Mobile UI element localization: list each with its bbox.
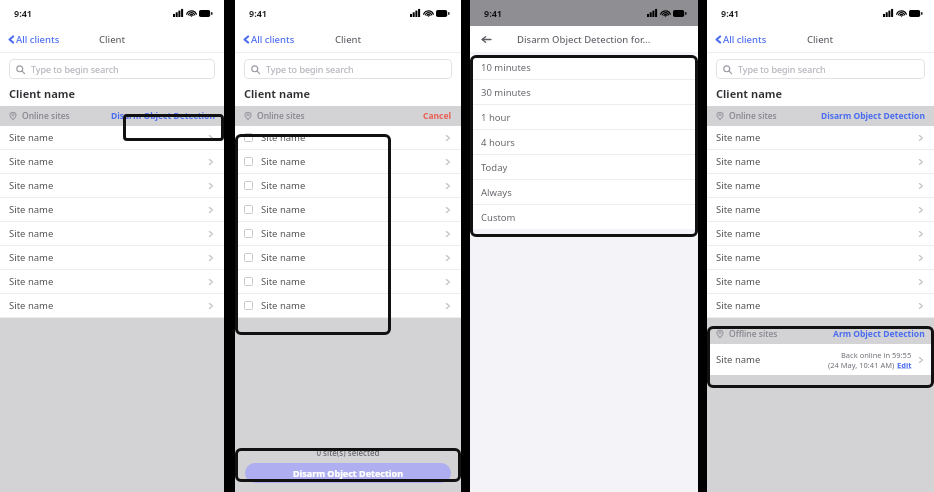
button[interactable]: Custom <box>470 205 698 229</box>
staticText: Type to begin search <box>738 63 826 75</box>
staticText: Site name <box>9 275 54 288</box>
staticText: Client <box>99 33 126 46</box>
button[interactable]: Type to begin search <box>9 59 215 79</box>
button[interactable]: Site name <box>0 246 224 270</box>
staticText: Site name <box>261 155 306 168</box>
button[interactable]: Back <box>479 32 493 46</box>
staticText: Site name <box>716 227 761 240</box>
staticText: 9:41 <box>249 7 267 19</box>
button[interactable]: Today <box>470 155 698 180</box>
button[interactable]: Edit <box>897 360 912 370</box>
staticText: Always <box>481 186 512 199</box>
button[interactable]: Site name <box>0 198 224 222</box>
button[interactable]: Disarm Object Detection <box>111 110 215 122</box>
staticText: Disarm Object Detection for... <box>517 33 651 46</box>
staticText: 9:41 <box>14 7 32 19</box>
button[interactable]: Site name <box>707 150 934 174</box>
staticText: Client <box>807 33 834 46</box>
staticText: Today <box>481 161 508 174</box>
staticText: All clients <box>16 33 60 46</box>
staticText: Site name <box>716 131 761 144</box>
button[interactable]: Disarm Object Detection <box>245 463 451 483</box>
staticText: Site name <box>261 251 306 264</box>
button[interactable]: Site name <box>235 150 461 174</box>
staticText: Site name <box>9 155 54 168</box>
button[interactable]: Always <box>470 180 698 205</box>
staticText: Site name <box>9 203 54 216</box>
button[interactable]: 30 minutes <box>470 80 698 105</box>
staticText: Site name <box>9 299 54 312</box>
staticText: Client name <box>9 86 76 101</box>
staticText: Site name <box>261 179 306 192</box>
staticText: Site name <box>9 131 54 144</box>
staticText: 9:41 <box>721 7 739 19</box>
button[interactable]: Site name <box>707 198 934 222</box>
button[interactable]: Site name <box>0 126 224 150</box>
button[interactable]: Cancel <box>423 110 452 122</box>
button[interactable]: Site name <box>235 174 461 198</box>
button[interactable]: Site name <box>0 150 224 174</box>
button[interactable]: Site name <box>0 294 224 318</box>
staticText: Disarm Object Detection <box>821 110 925 122</box>
staticText: 9:41 <box>484 7 502 19</box>
staticText: Client name <box>716 86 783 101</box>
staticText: Site name <box>261 299 306 312</box>
staticText: 0 site(s) selected <box>235 447 461 458</box>
button[interactable]: Site name <box>0 174 224 198</box>
button[interactable]: Site name <box>235 222 461 246</box>
staticText: Site name <box>716 155 761 168</box>
staticText: Online sites <box>729 110 777 122</box>
button[interactable]: Site name <box>235 198 461 222</box>
staticText: All clients <box>251 33 295 46</box>
staticText: Edit <box>897 360 912 370</box>
staticText: Site name <box>716 353 761 366</box>
staticText: Arm Object Detection <box>833 328 925 340</box>
staticText: Site name <box>716 179 761 192</box>
staticText: Site name <box>261 131 306 144</box>
staticText: Site name <box>261 227 306 240</box>
button[interactable]: Site name <box>707 344 934 375</box>
button[interactable]: Arm Object Detection <box>833 328 925 340</box>
staticText: Site name <box>716 251 761 264</box>
staticText: (24 May, 10:41 AM) <box>828 360 897 370</box>
staticText: Type to begin search <box>266 63 354 75</box>
staticText: Disarm Object Detection <box>293 467 404 479</box>
staticText: 1 hour <box>481 111 511 124</box>
button[interactable]: Site name <box>707 174 934 198</box>
button[interactable]: Site name <box>235 246 461 270</box>
button[interactable]: 4 hours <box>470 130 698 155</box>
staticText: Type to begin search <box>31 63 119 75</box>
staticText: Offline sites <box>729 328 778 340</box>
staticText: Site name <box>261 275 306 288</box>
staticText: Online sites <box>22 110 70 122</box>
button[interactable]: Site name <box>707 222 934 246</box>
button[interactable]: Site name <box>0 270 224 294</box>
staticText: Online sites <box>257 110 305 122</box>
button[interactable]: Disarm Object Detection <box>821 110 925 122</box>
staticText: Cancel <box>423 110 452 122</box>
button[interactable]: Site name <box>235 270 461 294</box>
button[interactable]: All clients <box>242 33 295 46</box>
staticText: Custom <box>481 211 516 224</box>
button[interactable]: Site name <box>707 246 934 270</box>
button[interactable]: Site name <box>707 294 934 318</box>
button[interactable]: 10 minutes <box>470 55 698 80</box>
button[interactable]: Site name <box>0 222 224 246</box>
button[interactable]: All clients <box>714 33 767 46</box>
button[interactable]: Site name <box>707 126 934 150</box>
button[interactable]: 1 hour <box>470 105 698 130</box>
button[interactable]: Type to begin search <box>244 59 452 79</box>
staticText: All clients <box>723 33 767 46</box>
button[interactable]: Site name <box>235 294 461 318</box>
button[interactable]: Site name <box>235 126 461 150</box>
staticText: 30 minutes <box>481 86 531 99</box>
button[interactable]: Site name <box>707 270 934 294</box>
staticText: 4 hours <box>481 136 515 149</box>
staticText: Client name <box>244 86 311 101</box>
staticText: Site name <box>716 299 761 312</box>
staticText: 10 minutes <box>481 61 531 74</box>
button[interactable]: All clients <box>7 33 60 46</box>
staticText: Site name <box>716 275 761 288</box>
staticText: Site name <box>716 203 761 216</box>
button[interactable]: Type to begin search <box>716 59 925 79</box>
